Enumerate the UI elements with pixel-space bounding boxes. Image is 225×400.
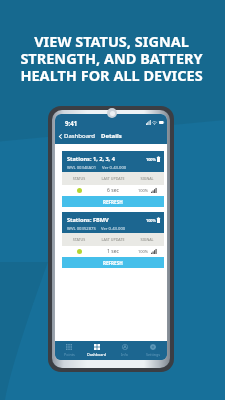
button[interactable]: REFRESH (62, 196, 164, 207)
staticText: Dashboard (87, 352, 107, 357)
staticText: Stations: 1, 2, 3, 4 (67, 155, 115, 163)
staticText: WVL 0035287S (67, 226, 96, 232)
staticText: Points (64, 352, 75, 357)
staticText: 100% (146, 157, 156, 162)
staticText: Dashboard (64, 132, 96, 140)
staticText: SIGNAL (130, 237, 164, 242)
staticText: STATUS (62, 237, 96, 242)
staticText: Ver 0.43.000 (101, 226, 126, 232)
staticText: Stations: FBMV (67, 216, 109, 224)
staticText: SIGNAL (130, 176, 164, 181)
staticText: 1 sec (96, 248, 130, 255)
staticText: LAST UPDATE (96, 176, 130, 181)
staticText: REFRESH (103, 260, 123, 266)
staticText: WVL 0034EA01 (67, 165, 97, 171)
button[interactable]: REFRESH (62, 257, 164, 268)
staticText: 100% (146, 218, 156, 223)
button[interactable]: Dashboard (83, 341, 111, 360)
button[interactable]: Info (111, 341, 139, 360)
staticText: VIEW STATUS, SIGNAL STRENGTH, AND BATTER… (20, 31, 203, 85)
staticText: 100% (138, 249, 149, 254)
staticText: Details (101, 132, 122, 140)
button[interactable]: Dashboard (55, 129, 100, 143)
staticText: Info (121, 352, 129, 357)
staticText: Settings (146, 352, 161, 357)
button[interactable]: Settings (139, 341, 167, 360)
staticText: 9:41 (65, 119, 78, 127)
staticText: STATUS (62, 176, 96, 181)
staticText: LAST UPDATE (96, 237, 130, 242)
staticText: Ver 0.43.000 (102, 165, 127, 171)
staticText: 6 sec (96, 187, 130, 194)
staticText: 100% (138, 188, 149, 193)
button[interactable]: Points (55, 341, 83, 360)
staticText: REFRESH (103, 199, 123, 205)
